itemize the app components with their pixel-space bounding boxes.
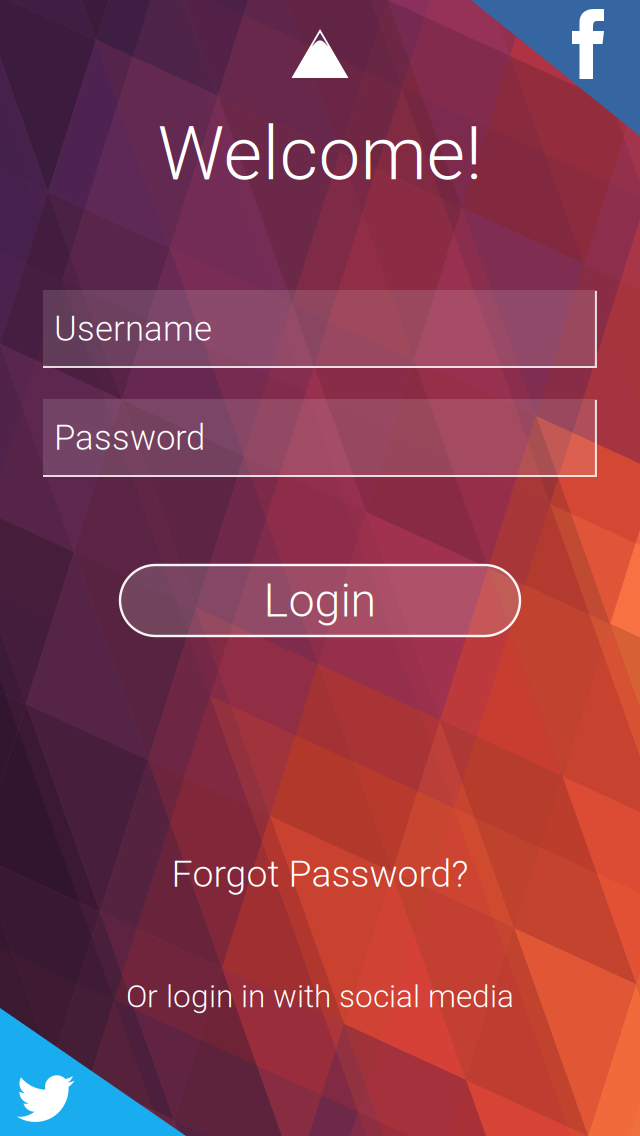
staticText: Login (263, 573, 376, 628)
staticText: Password (54, 418, 205, 458)
button[interactable]: Username (43, 290, 597, 368)
staticText: Or login in with social media (126, 978, 514, 1015)
staticText: Username (54, 309, 212, 349)
button[interactable]: Login (120, 565, 520, 636)
button[interactable]: Password (43, 399, 597, 477)
button[interactable]: Log in with Twitter (0, 0, 640, 1136)
button[interactable]: Log in with Facebook (0, 0, 640, 1136)
staticText: Forgot Password? (171, 852, 468, 896)
staticText: Welcome! (157, 110, 482, 197)
button[interactable]: Forgot Password? (171, 852, 468, 896)
